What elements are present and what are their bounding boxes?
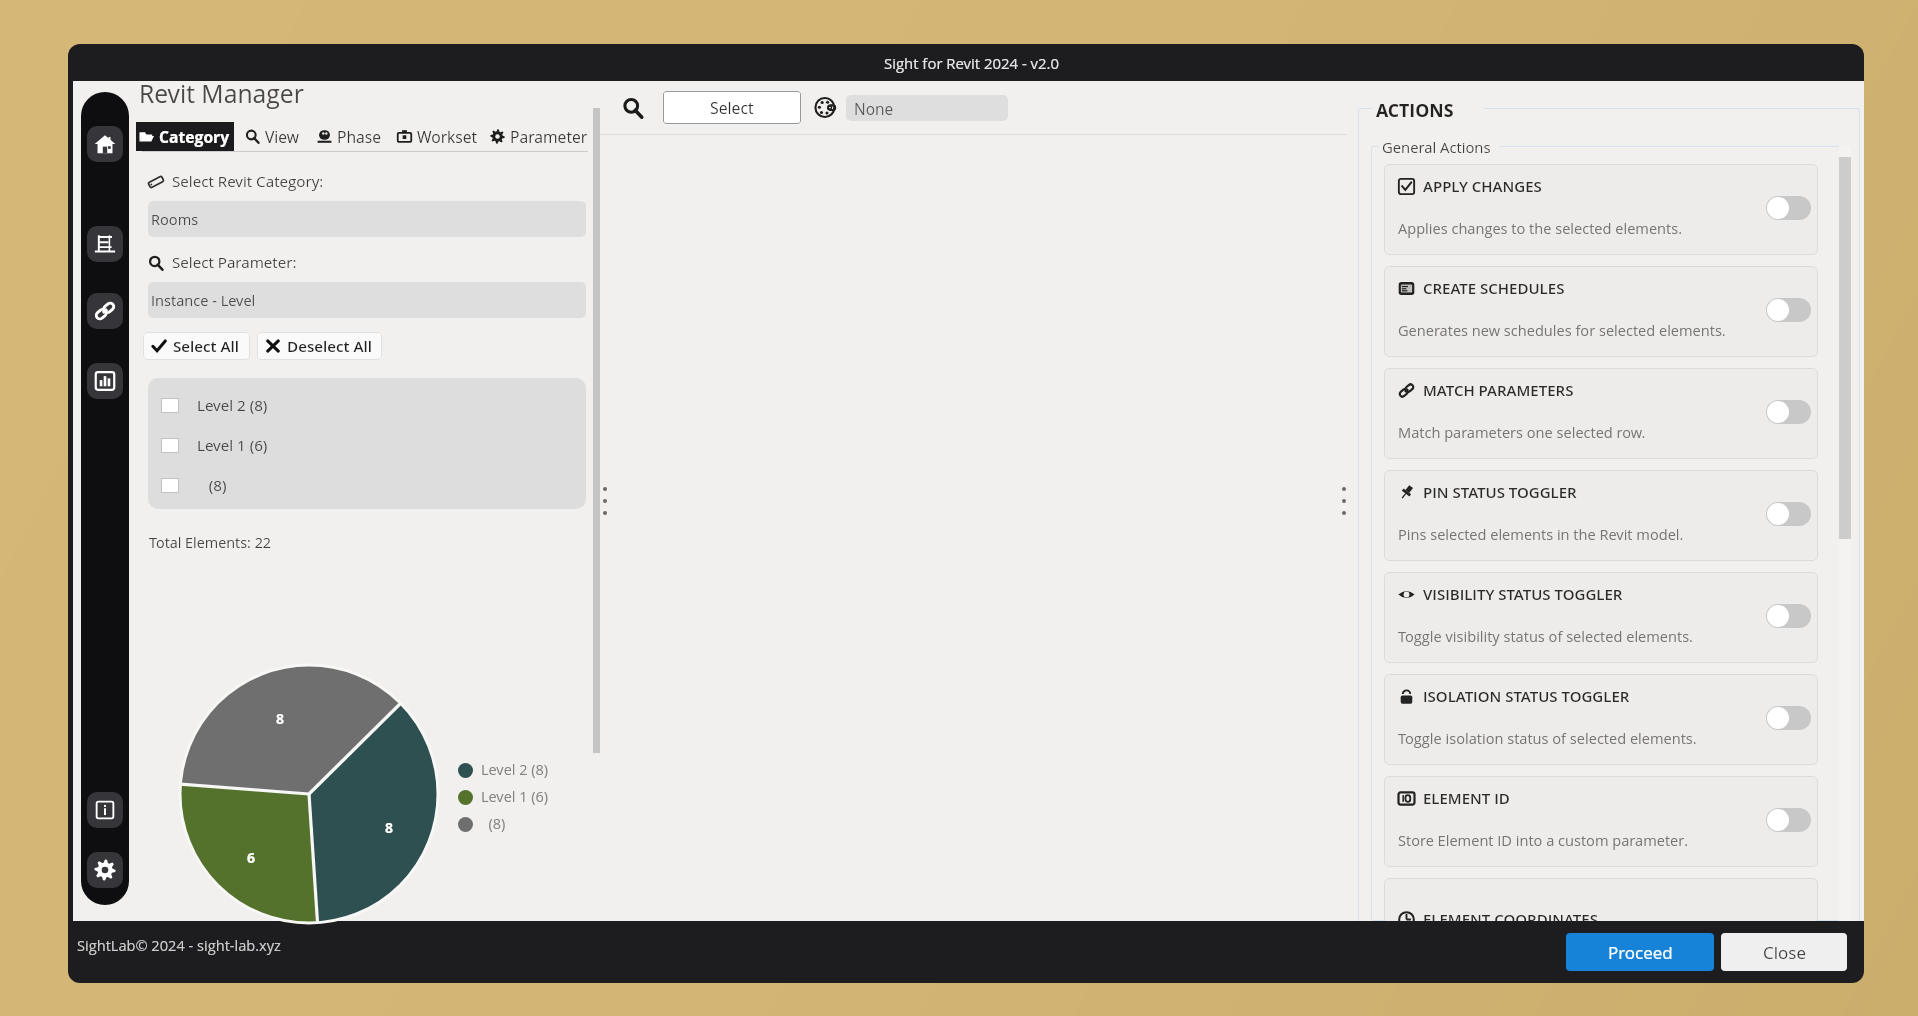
button[interactable]: Instance - Level bbox=[148, 282, 586, 318]
button[interactable]: Toggle APPLY CHANGES bbox=[1766, 196, 1811, 220]
button[interactable]: Select bbox=[663, 91, 801, 124]
staticText: Select Revit Category: bbox=[172, 171, 324, 192]
staticText: (8) bbox=[197, 475, 227, 496]
button[interactable]: ELEMENT COORDINATES bbox=[1384, 878, 1818, 921]
staticText: Level 1 (6) bbox=[481, 787, 549, 807]
button[interactable]: Close bbox=[1721, 933, 1847, 971]
staticText: MATCH PARAMETERS bbox=[1423, 380, 1574, 400]
staticText: 8 bbox=[385, 818, 393, 837]
button[interactable]: Level 2 (8) bbox=[148, 385, 586, 425]
staticText: Deselect All bbox=[287, 336, 372, 357]
button[interactable]: Toggle VISIBILITY STATUS TOGGLER bbox=[1766, 604, 1811, 628]
button[interactable]: Rooms bbox=[148, 201, 586, 237]
staticText: Toggle visibility status of selected ele… bbox=[1398, 626, 1693, 646]
staticText: Pins selected elements in the Revit mode… bbox=[1398, 524, 1684, 544]
staticText: VISIBILITY STATUS TOGGLER bbox=[1423, 584, 1623, 604]
staticText: Store Element ID into a custom parameter… bbox=[1398, 830, 1689, 850]
button[interactable]: Toggle ISOLATION STATUS TOGGLER bbox=[1766, 706, 1811, 730]
button[interactable]: Info bbox=[87, 792, 123, 828]
staticText: Total Elements: 22 bbox=[149, 533, 272, 553]
button[interactable]: Workset bbox=[397, 122, 478, 151]
button[interactable]: Charts bbox=[87, 363, 123, 399]
button[interactable]: None bbox=[846, 95, 1008, 121]
button[interactable]: Search elements bbox=[622, 97, 644, 119]
staticText: ISOLATION STATUS TOGGLER bbox=[1423, 686, 1630, 706]
staticText: 6 bbox=[247, 848, 255, 867]
staticText: None bbox=[854, 98, 894, 119]
staticText: Sight for Revit 2024 - v2.0 bbox=[884, 53, 1059, 73]
staticText: Close bbox=[1763, 941, 1806, 964]
button[interactable]: Toggle ELEMENT ID bbox=[1766, 808, 1811, 832]
button[interactable]: Level 1 (6) bbox=[148, 425, 586, 465]
button[interactable]: Proceed bbox=[1566, 933, 1714, 971]
button[interactable]: Toggle PIN STATUS TOGGLER bbox=[1766, 502, 1811, 526]
staticText: ELEMENT ID bbox=[1423, 788, 1510, 808]
staticText: Phase bbox=[337, 126, 382, 147]
staticText: Generates new schedules for selected ele… bbox=[1398, 320, 1726, 340]
staticText: Select All bbox=[173, 336, 240, 357]
staticText: Level 2 (8) bbox=[481, 760, 549, 780]
staticText: (8) bbox=[481, 814, 506, 834]
staticText: SightLab© 2024 - sight-lab.xyz bbox=[77, 935, 281, 955]
button[interactable]: Choose colour bbox=[815, 97, 836, 118]
staticText: Select Parameter: bbox=[172, 252, 297, 273]
button[interactable] bbox=[136, 122, 234, 151]
button[interactable]: Parameter bbox=[490, 122, 588, 151]
staticText: APPLY CHANGES bbox=[1423, 176, 1542, 196]
staticText: Category bbox=[159, 126, 230, 147]
staticText: Select bbox=[710, 97, 754, 119]
staticText: General Actions bbox=[1382, 137, 1491, 157]
button[interactable]: Toggle MATCH PARAMETERS bbox=[1766, 400, 1811, 424]
staticText: Level 2 (8) bbox=[197, 395, 268, 416]
button[interactable]: Levels bbox=[87, 226, 123, 262]
button[interactable]: Home bbox=[87, 126, 123, 162]
staticText: View bbox=[265, 126, 299, 147]
staticText: Applies changes to the selected elements… bbox=[1398, 218, 1683, 238]
staticText: ACTIONS bbox=[1376, 98, 1454, 122]
staticText: Workset bbox=[417, 126, 478, 147]
staticText: Rooms bbox=[151, 209, 199, 229]
button[interactable]: (8) bbox=[148, 465, 586, 505]
button[interactable]: Resize panel bbox=[1341, 81, 1346, 921]
button[interactable]: APPLY CHANGES bbox=[1384, 164, 1818, 255]
button[interactable]: PIN STATUS TOGGLER bbox=[1384, 470, 1818, 561]
staticText: Revit Manager bbox=[139, 77, 304, 111]
button[interactable]: Resize panel bbox=[602, 81, 607, 921]
button[interactable]: CREATE SCHEDULES bbox=[1384, 266, 1818, 357]
staticText: Toggle isolation status of selected elem… bbox=[1398, 728, 1697, 748]
staticText: ELEMENT COORDINATES bbox=[1423, 909, 1598, 921]
staticText: Match parameters one selected row. bbox=[1398, 422, 1646, 442]
button[interactable]: Links bbox=[87, 293, 123, 329]
button[interactable]: ELEMENT ID bbox=[1384, 776, 1818, 867]
button[interactable]: View bbox=[245, 122, 299, 151]
staticText: Proceed bbox=[1608, 941, 1673, 964]
button[interactable]: Settings bbox=[87, 852, 123, 888]
button[interactable]: ISOLATION STATUS TOGGLER bbox=[1384, 674, 1818, 765]
button[interactable]: Category bbox=[139, 122, 230, 151]
staticText: PIN STATUS TOGGLER bbox=[1423, 482, 1577, 502]
button[interactable]: VISIBILITY STATUS TOGGLER bbox=[1384, 572, 1818, 663]
button[interactable]: Select All bbox=[143, 332, 250, 360]
staticText: Instance - Level bbox=[151, 290, 256, 310]
staticText: Parameter bbox=[510, 126, 588, 147]
button[interactable]: MATCH PARAMETERS bbox=[1384, 368, 1818, 459]
button[interactable]: Phase bbox=[317, 122, 382, 151]
button[interactable]: Deselect All bbox=[257, 332, 382, 360]
staticText: Level 1 (6) bbox=[197, 435, 268, 456]
staticText: 8 bbox=[276, 709, 284, 728]
button[interactable]: Toggle CREATE SCHEDULES bbox=[1766, 298, 1811, 322]
staticText: CREATE SCHEDULES bbox=[1423, 278, 1565, 298]
